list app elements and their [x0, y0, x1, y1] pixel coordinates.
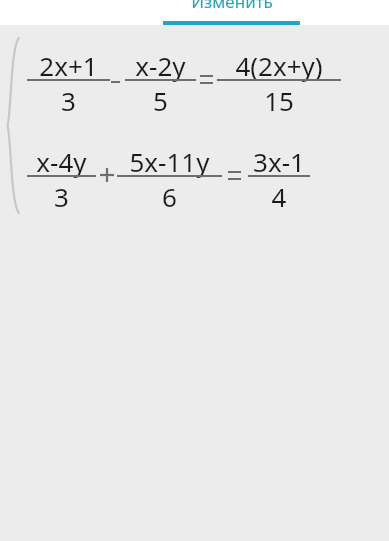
staticText: 3: [27, 179, 96, 214]
staticText: 15: [217, 83, 341, 118]
staticText: x-2y: [125, 48, 196, 83]
staticText: 5: [125, 83, 196, 118]
staticText: 5x-11y: [117, 144, 222, 179]
staticText: 2x+1: [27, 48, 110, 83]
staticText: Изменить: [191, 0, 273, 13]
button[interactable]: Изменить: [163, 0, 300, 25]
staticText: 4: [248, 179, 310, 214]
staticText: 3: [27, 83, 110, 118]
staticText: 6: [117, 179, 222, 214]
staticText: 3x-1: [248, 144, 310, 179]
staticText: 4(2x+y): [217, 48, 341, 83]
staticText: x-4y: [27, 144, 96, 179]
